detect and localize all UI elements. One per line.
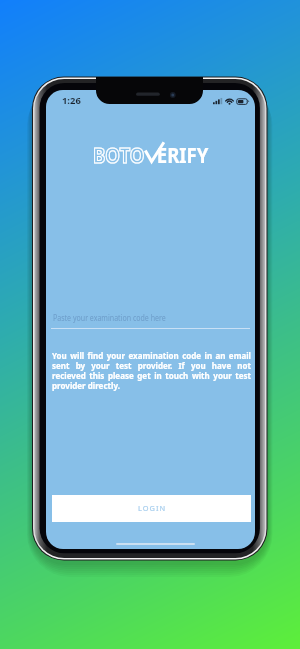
staticText: You will find your examination code in a… <box>52 350 251 391</box>
staticText: LOGIN <box>138 503 166 513</box>
other: Signal, wifi and battery status <box>213 98 249 106</box>
staticText: BOTO <box>93 141 145 170</box>
staticText: 1:26 <box>62 94 81 107</box>
staticText: ERIFY <box>157 141 209 170</box>
staticText: Paste your examination code here <box>53 312 166 323</box>
button[interactable]: LOGIN <box>52 495 251 522</box>
